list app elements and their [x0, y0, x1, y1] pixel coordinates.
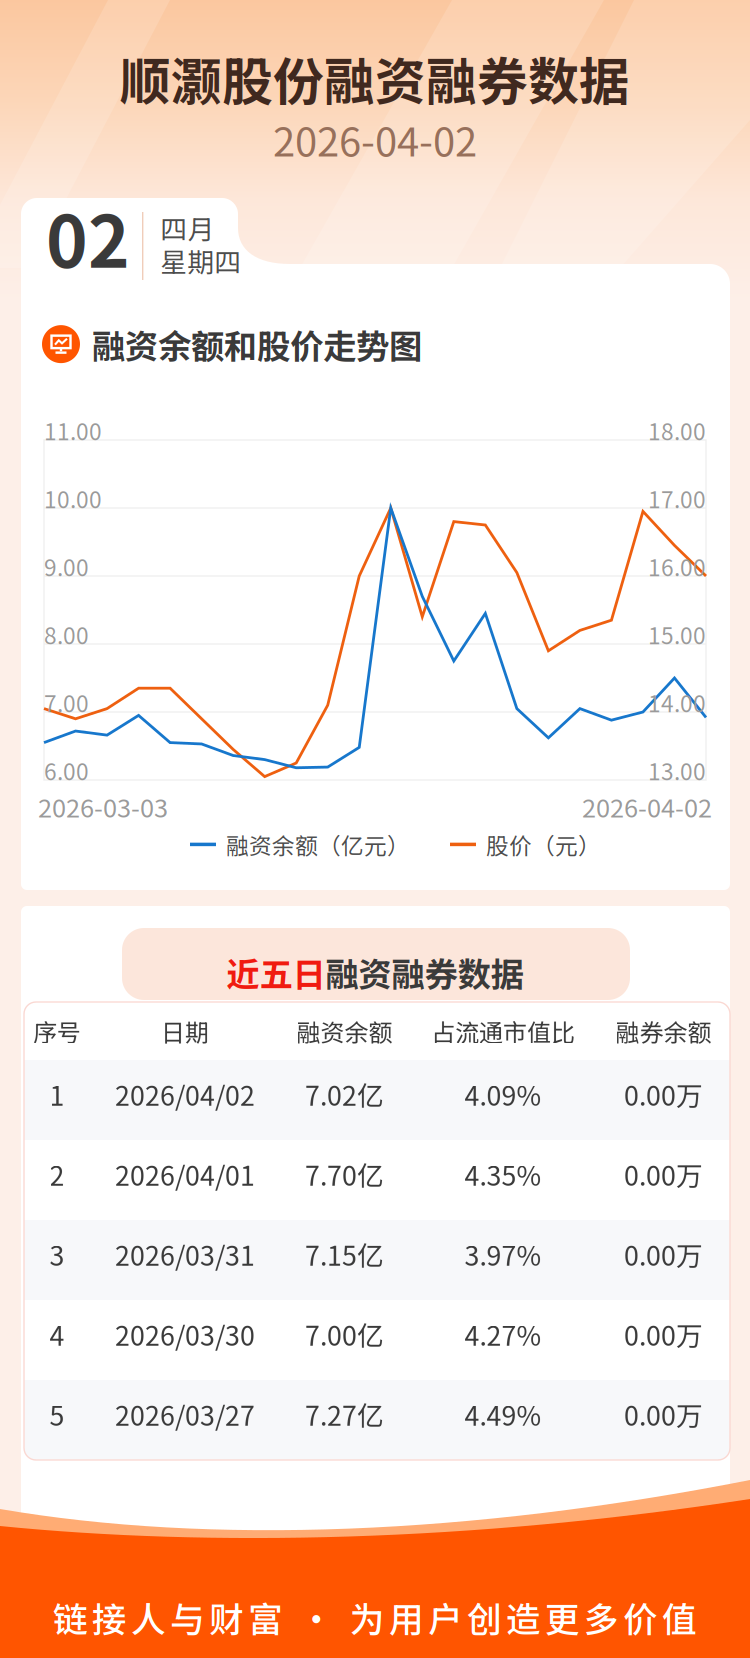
staticText: 2026-04-02	[273, 110, 477, 168]
staticText: 4.09%	[464, 1075, 541, 1113]
staticText: 2026/04/02	[115, 1075, 255, 1113]
staticText: 10.00	[44, 482, 102, 515]
staticText: 8.00	[44, 618, 89, 651]
staticText: 7.70亿	[305, 1155, 384, 1193]
staticText: 4	[49, 1315, 64, 1353]
staticText: 2026/03/31	[115, 1235, 255, 1273]
staticText: 0.00万	[624, 1155, 703, 1193]
staticText: 序号	[33, 1014, 81, 1048]
staticText: 9.00	[44, 550, 89, 583]
staticText: 融资融券数据	[325, 948, 523, 996]
staticText: 融资余额和股价走势图	[92, 320, 422, 368]
staticText: 14.00	[648, 686, 706, 719]
staticText: 13.00	[648, 754, 706, 787]
staticText: 5	[49, 1395, 64, 1433]
staticText: 2026-03-03	[38, 788, 168, 825]
staticText: 0.00万	[624, 1235, 703, 1273]
staticText: 7.27亿	[305, 1395, 384, 1433]
staticText: 融资余额（亿元）	[226, 828, 410, 861]
staticText: 7.02亿	[305, 1075, 384, 1113]
staticText: 0.00万	[624, 1315, 703, 1353]
staticText: 17.00	[648, 482, 706, 515]
staticText: 融券余额	[615, 1014, 711, 1048]
staticText: 7.15亿	[305, 1235, 384, 1273]
staticText: 11.00	[44, 414, 102, 447]
staticText: 近五日	[226, 948, 325, 996]
staticText: 4.27%	[464, 1315, 541, 1353]
staticText: 2	[49, 1155, 64, 1193]
staticText: 18.00	[648, 414, 706, 447]
staticText: 2026/04/01	[115, 1155, 255, 1193]
staticText: 4.49%	[464, 1395, 541, 1433]
staticText: 2026-04-02	[582, 788, 712, 825]
staticText: 星期四	[160, 241, 241, 280]
staticText: 融资余额	[296, 1014, 392, 1048]
staticText: 顺灏股份融资融券数据	[120, 41, 630, 115]
staticText: 1	[49, 1075, 64, 1113]
staticText: 0.00万	[624, 1395, 703, 1433]
staticText: 股价（元）	[486, 828, 601, 861]
staticText: 02	[46, 186, 130, 288]
staticText: 16.00	[648, 550, 706, 583]
staticText: 2026/03/27	[115, 1395, 255, 1433]
staticText: 6.00	[44, 754, 89, 787]
staticText: 7.00	[44, 686, 89, 719]
staticText: 2026/03/30	[115, 1315, 255, 1353]
staticText: 占流通市值比	[431, 1014, 575, 1048]
staticText: 3	[49, 1235, 64, 1273]
staticText: 0.00万	[624, 1075, 703, 1113]
staticText: 15.00	[648, 618, 706, 651]
staticText: 7.00亿	[305, 1315, 384, 1353]
staticText: 日期	[161, 1014, 209, 1048]
staticText: 链接人与财富 · 为用户创造更多价值	[53, 1592, 697, 1642]
staticText: 4.35%	[464, 1155, 541, 1193]
staticText: 四月	[160, 208, 214, 247]
staticText: 3.97%	[464, 1235, 541, 1273]
